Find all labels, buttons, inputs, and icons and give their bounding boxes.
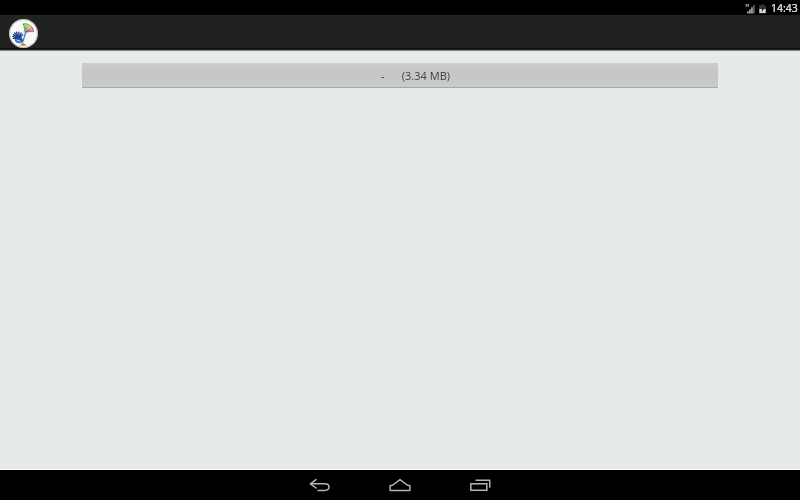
button[interactable]: App icon — [9, 19, 38, 48]
button[interactable]: Back — [290, 469, 350, 500]
staticText: 14:43 — [771, 1, 798, 15]
button[interactable]: - (3.34 MB) — [82, 63, 718, 88]
button[interactable]: Recent apps — [450, 469, 510, 500]
button[interactable]: Home — [370, 469, 430, 500]
staticText: - (3.34 MB) — [381, 68, 451, 83]
